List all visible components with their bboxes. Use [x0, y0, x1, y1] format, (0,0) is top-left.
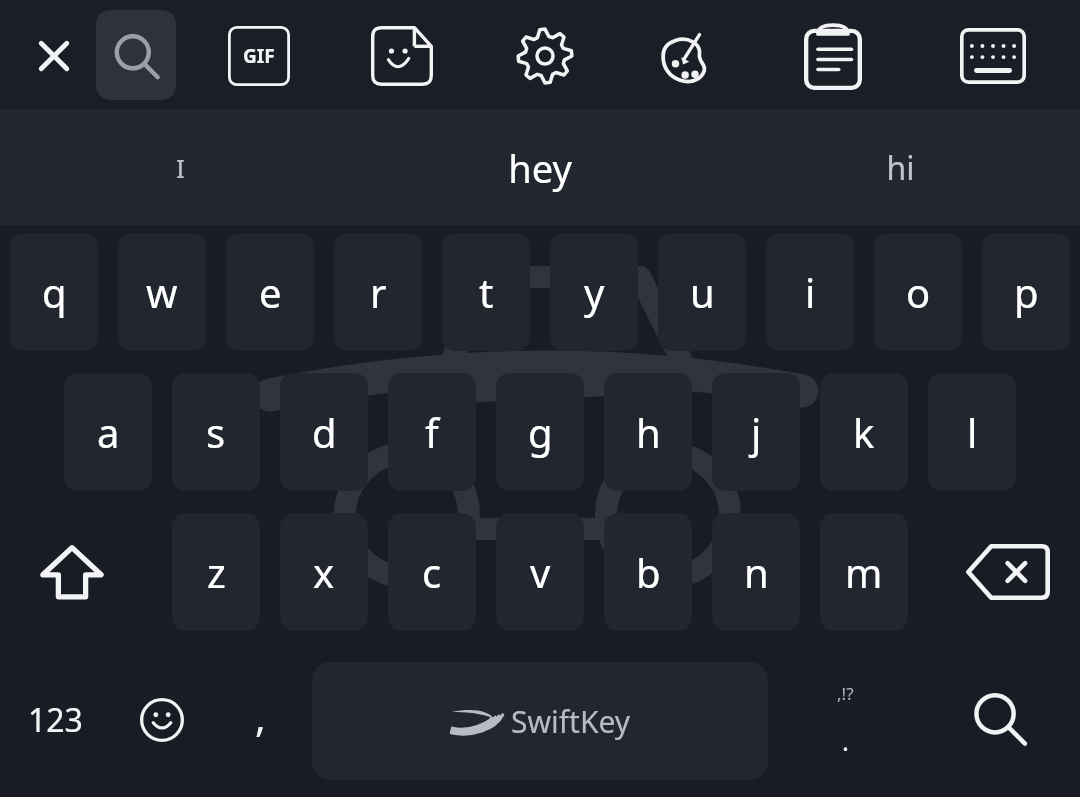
- staticText: ,: [255, 689, 266, 743]
- button[interactable]: l: [928, 373, 1016, 491]
- button[interactable]: x: [280, 513, 368, 631]
- button[interactable]: hey: [360, 110, 720, 225]
- button[interactable]: Clipboard: [792, 10, 874, 102]
- staticText: m: [845, 545, 883, 599]
- button[interactable]: q: [10, 233, 98, 351]
- staticText: o: [906, 265, 931, 319]
- staticText: f: [425, 405, 439, 459]
- staticText: .: [842, 723, 849, 758]
- staticText: a: [97, 405, 120, 459]
- button[interactable]: p: [982, 233, 1070, 351]
- staticText: hey: [508, 142, 572, 194]
- staticText: c: [422, 545, 442, 599]
- staticText: ,!?: [837, 682, 854, 705]
- button[interactable]: y: [550, 233, 638, 351]
- button[interactable]: Emoji: [117, 655, 207, 785]
- button[interactable]: g: [496, 373, 584, 491]
- button[interactable]: Themes: [643, 12, 735, 100]
- staticText: w: [146, 265, 178, 319]
- staticText: u: [690, 265, 715, 319]
- button[interactable]: w: [118, 233, 206, 351]
- button[interactable]: b: [604, 513, 692, 631]
- button[interactable]: Settings: [501, 13, 589, 99]
- staticText: 123: [28, 698, 83, 742]
- button[interactable]: Search: [96, 10, 176, 100]
- staticText: t: [479, 265, 494, 319]
- staticText: e: [259, 265, 282, 319]
- staticText: p: [1014, 265, 1039, 319]
- button[interactable]: Keyboard layout: [948, 16, 1038, 96]
- button[interactable]: c: [388, 513, 476, 631]
- button[interactable]: j: [712, 373, 800, 491]
- button[interactable]: Shift: [10, 513, 134, 631]
- button[interactable]: r: [334, 233, 422, 351]
- button[interactable]: Close: [10, 12, 98, 100]
- staticText: d: [312, 405, 337, 459]
- staticText: l: [967, 405, 978, 459]
- button[interactable]: v: [496, 513, 584, 631]
- staticText: x: [313, 545, 335, 599]
- button[interactable]: t: [442, 233, 530, 351]
- staticText: h: [636, 405, 661, 459]
- button[interactable]: Stickers: [359, 14, 445, 98]
- button[interactable]: o: [874, 233, 962, 351]
- button[interactable]: Backspace: [946, 513, 1070, 631]
- button[interactable]: a: [64, 373, 152, 491]
- button[interactable]: ,!?: [790, 655, 900, 785]
- button[interactable]: i: [766, 233, 854, 351]
- button[interactable]: Space: [312, 662, 768, 780]
- staticText: i: [805, 265, 816, 319]
- button[interactable]: I: [0, 110, 360, 225]
- button[interactable]: m: [820, 513, 908, 631]
- button[interactable]: d: [280, 373, 368, 491]
- button[interactable]: Search: [930, 655, 1070, 785]
- staticText: j: [751, 405, 762, 459]
- staticText: q: [42, 265, 67, 319]
- staticText: y: [584, 265, 605, 319]
- staticText: v: [530, 545, 551, 599]
- button[interactable]: GIF: [216, 14, 302, 98]
- button[interactable]: hi: [720, 110, 1080, 225]
- staticText: z: [207, 545, 226, 599]
- button[interactable]: z: [172, 513, 260, 631]
- button[interactable]: 123: [0, 655, 110, 785]
- staticText: s: [206, 405, 226, 459]
- staticText: SwiftKey: [511, 701, 631, 742]
- staticText: b: [636, 545, 661, 599]
- staticText: r: [370, 265, 387, 319]
- button[interactable]: e: [226, 233, 314, 351]
- button[interactable]: n: [712, 513, 800, 631]
- staticText: GIF: [243, 43, 275, 69]
- staticText: k: [853, 405, 875, 459]
- staticText: I: [176, 150, 185, 185]
- button[interactable]: s: [172, 373, 260, 491]
- button[interactable]: ,: [212, 655, 308, 785]
- staticText: n: [744, 545, 769, 599]
- button[interactable]: u: [658, 233, 746, 351]
- staticText: g: [528, 405, 553, 459]
- button[interactable]: k: [820, 373, 908, 491]
- button[interactable]: f: [388, 373, 476, 491]
- button[interactable]: h: [604, 373, 692, 491]
- staticText: hi: [886, 146, 915, 190]
